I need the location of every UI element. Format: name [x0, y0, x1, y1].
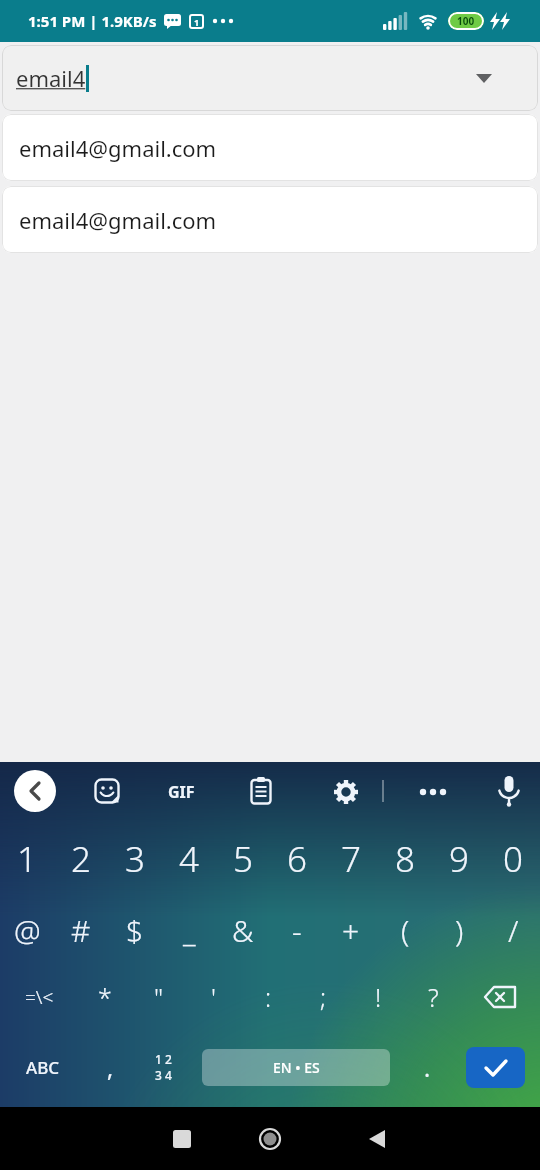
button[interactable]: _: [162, 898, 216, 962]
staticText: @: [14, 910, 41, 951]
button[interactable]: [14, 770, 56, 812]
button[interactable]: *: [78, 962, 132, 1032]
staticText: #: [71, 910, 91, 951]
staticText: ;: [320, 980, 327, 1014]
button[interactable]: !: [351, 962, 406, 1032]
button[interactable]: +: [324, 898, 378, 962]
button[interactable]: ABC: [8, 1032, 78, 1102]
button[interactable]: [466, 1047, 525, 1088]
staticText: /: [508, 910, 519, 951]
staticText: 9: [449, 835, 469, 883]
staticText: 1: [194, 16, 200, 28]
button[interactable]: 1: [0, 820, 54, 898]
staticText: ": [154, 980, 164, 1014]
staticText: 0: [503, 835, 523, 883]
button[interactable]: [90, 774, 124, 808]
button[interactable]: [492, 772, 526, 812]
staticText: *: [98, 980, 112, 1014]
staticText: 8: [395, 835, 415, 883]
button[interactable]: GIF: [156, 776, 206, 808]
staticText: =\<: [25, 984, 54, 1010]
staticText: &: [232, 910, 254, 951]
button[interactable]: ?: [406, 962, 461, 1032]
staticText: ,: [107, 1052, 114, 1083]
staticText: +: [342, 910, 360, 951]
button[interactable]: 0: [486, 820, 540, 898]
staticText: 100: [457, 14, 475, 28]
button[interactable]: email4@gmail.com: [2, 186, 538, 253]
staticText: 3: [125, 835, 145, 883]
staticText: email4: [16, 63, 86, 93]
button[interactable]: [412, 776, 454, 808]
button[interactable]: 8: [378, 820, 432, 898]
button[interactable]: [328, 774, 364, 810]
button[interactable]: =\<: [0, 962, 78, 1032]
button[interactable]: 9: [432, 820, 486, 898]
button[interactable]: 3: [108, 820, 162, 898]
button[interactable]: [341, 1107, 413, 1170]
button[interactable]: 1 2: [138, 1032, 188, 1102]
button[interactable]: .: [405, 1032, 450, 1102]
button[interactable]: #: [54, 898, 108, 962]
button[interactable]: [244, 774, 278, 808]
staticText: email4@gmail.com: [19, 133, 217, 163]
button[interactable]: ;: [296, 962, 351, 1032]
button[interactable]: $: [108, 898, 162, 962]
staticText: 1 2: [155, 1051, 172, 1067]
staticText: GIF: [168, 781, 195, 803]
staticText: (: [401, 910, 410, 951]
staticText: ': [211, 980, 216, 1014]
staticText: !: [375, 980, 382, 1014]
staticText: 3 4: [155, 1067, 172, 1083]
button[interactable]: [234, 1107, 306, 1170]
staticText: 5: [233, 835, 253, 883]
staticText: .: [424, 1052, 431, 1083]
staticText: 1: [17, 835, 37, 883]
staticText: ): [455, 910, 464, 951]
staticText: _: [183, 910, 196, 951]
button[interactable]: 2: [54, 820, 108, 898]
button[interactable]: :: [241, 962, 296, 1032]
button[interactable]: email4@gmail.com: [2, 114, 538, 181]
button[interactable]: 4: [162, 820, 216, 898]
staticText: email4@gmail.com: [19, 205, 217, 235]
staticText: ABC: [26, 1056, 60, 1079]
staticText: 1:51 PM | 1.9KB/s: [28, 11, 157, 31]
staticText: :: [265, 980, 272, 1014]
button[interactable]: 7: [324, 820, 378, 898]
button[interactable]: -: [270, 898, 324, 962]
button[interactable]: 5: [216, 820, 270, 898]
button[interactable]: ': [186, 962, 241, 1032]
staticText: 6: [287, 835, 307, 883]
staticText: $: [126, 910, 144, 951]
button[interactable]: /: [486, 898, 540, 962]
button[interactable]: email4: [2, 45, 538, 111]
button[interactable]: [461, 962, 540, 1032]
staticText: 2: [71, 835, 91, 883]
staticText: 4: [179, 835, 199, 883]
staticText: 7: [341, 835, 361, 883]
button[interactable]: 6: [270, 820, 324, 898]
button[interactable]: @: [0, 898, 54, 962]
button[interactable]: &: [216, 898, 270, 962]
button[interactable]: ": [132, 962, 186, 1032]
button[interactable]: ): [432, 898, 486, 962]
staticText: -: [292, 910, 302, 951]
button[interactable]: EN • ES: [202, 1049, 390, 1086]
button[interactable]: ,: [88, 1032, 133, 1102]
button[interactable]: (: [378, 898, 432, 962]
staticText: EN • ES: [273, 1058, 320, 1077]
staticText: ?: [428, 980, 439, 1014]
button[interactable]: [146, 1107, 218, 1170]
